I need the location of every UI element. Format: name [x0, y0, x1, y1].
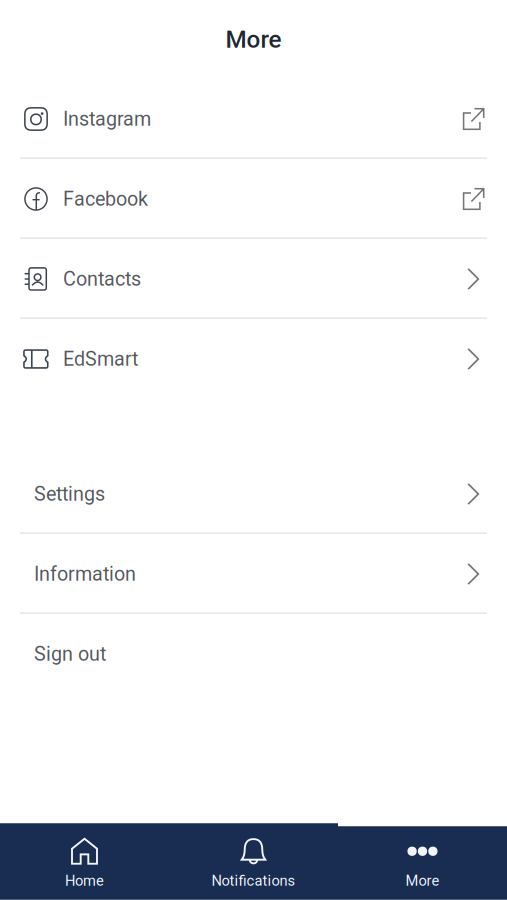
staticText: Notifications	[211, 872, 295, 889]
button[interactable]: More	[338, 823, 507, 900]
staticText: Information	[34, 562, 136, 585]
staticText: EdSmart	[63, 347, 138, 370]
button[interactable]: Sign out	[0, 614, 507, 694]
staticText: Sign out	[34, 642, 106, 665]
button[interactable]: EdSmart	[0, 319, 507, 399]
staticText: Facebook	[63, 187, 148, 210]
staticText: More	[405, 872, 439, 889]
button[interactable]: Contacts	[0, 239, 507, 319]
button[interactable]: Facebook	[0, 159, 507, 239]
button[interactable]: Information	[0, 534, 507, 614]
button[interactable]: Home	[0, 823, 169, 900]
staticText: Home	[65, 872, 104, 889]
button[interactable]: Notifications	[169, 823, 338, 900]
staticText: Settings	[34, 482, 105, 505]
staticText: More	[225, 25, 281, 54]
staticText: Instagram	[63, 107, 151, 130]
button[interactable]: Settings	[0, 454, 507, 534]
staticText: Contacts	[63, 267, 141, 290]
button[interactable]: Instagram	[0, 79, 507, 159]
